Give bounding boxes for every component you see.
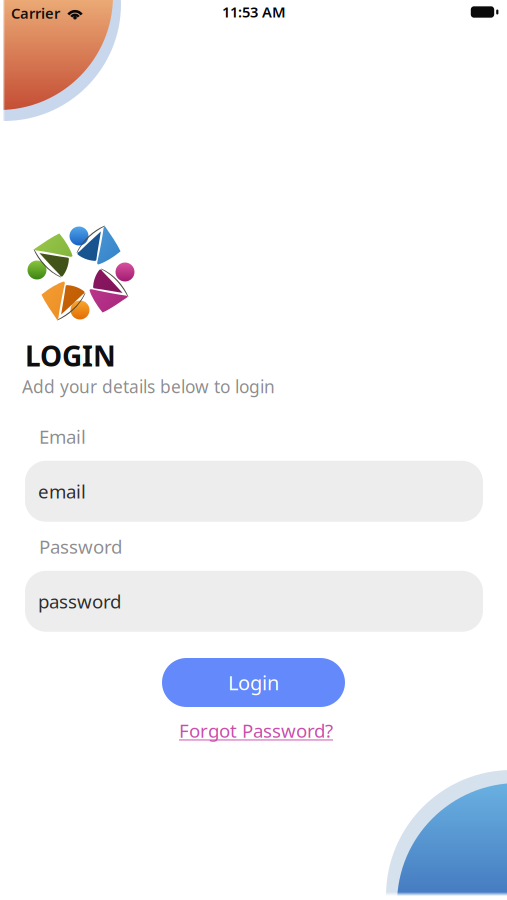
- button[interactable]: email: [25, 461, 483, 522]
- staticText: email: [38, 479, 86, 504]
- staticText: Carrier: [11, 3, 60, 23]
- button[interactable]: Forgot Password?: [176, 716, 336, 745]
- staticText: Email: [39, 424, 86, 449]
- button[interactable]: Login: [162, 658, 345, 707]
- staticText: Forgot Password?: [179, 718, 333, 743]
- button[interactable]: password: [25, 571, 483, 632]
- staticText: LOGIN: [25, 337, 116, 374]
- staticText: password: [38, 589, 121, 614]
- staticText: Login: [228, 669, 279, 696]
- staticText: Password: [39, 534, 122, 559]
- staticText: 11:53 AM: [222, 2, 286, 21]
- staticText: Add your details below to login: [22, 375, 275, 398]
